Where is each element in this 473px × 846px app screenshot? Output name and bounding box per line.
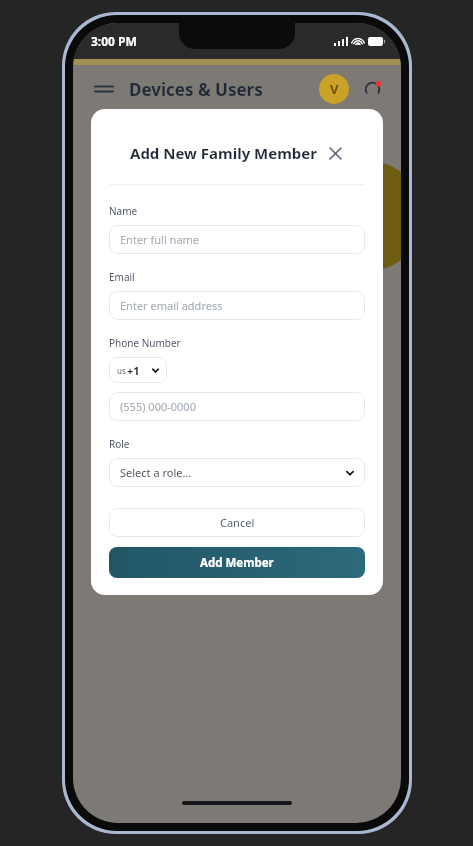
button[interactable]: Cancel xyxy=(109,508,365,537)
staticText: Add New Family Member xyxy=(130,143,317,163)
staticText: Phone Number xyxy=(109,336,181,350)
button[interactable]: Enter email address xyxy=(109,291,365,320)
button[interactable]: Select a role... xyxy=(109,458,365,487)
staticText: Enter email address xyxy=(120,298,223,313)
staticText: Enter full name xyxy=(120,232,200,247)
staticText: (555) 000-0000 xyxy=(120,399,196,414)
staticText: 3:00 PM xyxy=(91,33,137,49)
button[interactable]: Enter full name xyxy=(109,225,365,254)
staticText: us xyxy=(117,365,126,376)
button[interactable]: Close xyxy=(325,143,345,163)
staticText: V xyxy=(330,80,339,98)
button[interactable]: Notifications xyxy=(357,74,387,104)
button[interactable]: Add Member xyxy=(109,547,365,578)
button[interactable]: Profile xyxy=(319,74,349,104)
staticText: +1 xyxy=(127,363,140,378)
button[interactable]: (555) 000-0000 xyxy=(109,392,365,421)
staticText: Select a role... xyxy=(120,465,192,480)
staticText: Name xyxy=(109,204,138,218)
staticText: Add Member xyxy=(200,555,274,571)
staticText: Cancel xyxy=(220,515,255,530)
staticText: Role xyxy=(109,437,130,451)
staticText: Devices & Users xyxy=(129,78,263,101)
button[interactable]: Menu xyxy=(87,72,121,106)
staticText: Email xyxy=(109,270,135,284)
button[interactable]: us xyxy=(109,357,167,383)
